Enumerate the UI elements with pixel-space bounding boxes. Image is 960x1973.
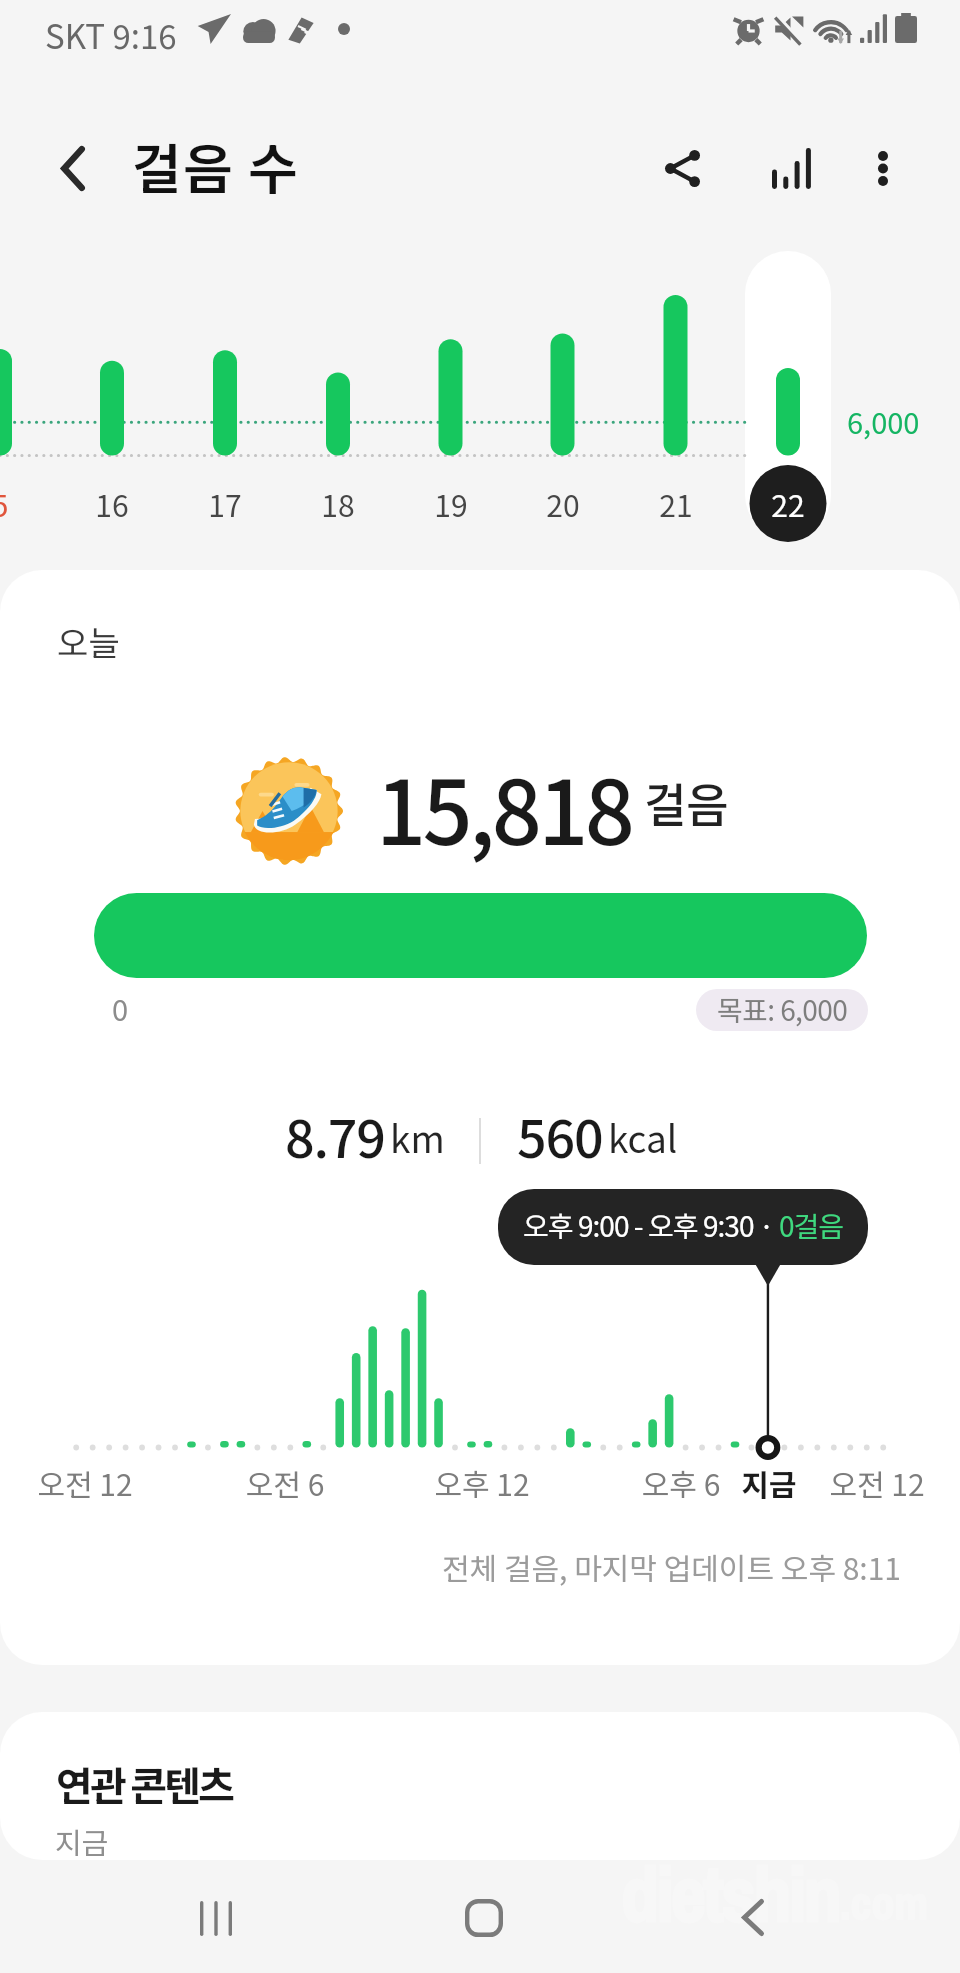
staticText: 전체 걸음, 마지막 업데이트 오후 8:11 — [0, 1545, 901, 1588]
staticText: km — [390, 1110, 445, 1164]
staticText: 8.79 — [285, 1098, 385, 1173]
button[interactable]: Back — [693, 1857, 813, 1973]
staticText: 지금 — [669, 1461, 869, 1504]
staticText: 16 — [52, 482, 172, 525]
staticText: 15,818 — [376, 743, 632, 870]
staticText: 지금 — [55, 1820, 109, 1860]
button[interactable]: Home — [424, 1858, 544, 1973]
staticText: 18 — [278, 482, 398, 525]
staticText: 오전 6 — [185, 1461, 385, 1504]
staticText: 오전 12 — [777, 1461, 960, 1504]
button[interactable]: 오늘 — [0, 570, 960, 1665]
staticText: 0걸음 — [779, 1205, 844, 1246]
staticText: 17 — [165, 482, 285, 525]
staticText: 21 — [616, 482, 736, 525]
staticText: 6,000 — [847, 400, 920, 442]
staticText: 20 — [503, 482, 623, 525]
button[interactable]: 연관 콘텐츠 — [0, 1712, 960, 1860]
staticText: dietshin — [621, 1842, 840, 1944]
staticText: 오후 12 — [382, 1461, 582, 1504]
staticText: 오후 6 — [581, 1461, 781, 1504]
staticText: 오전 12 — [0, 1461, 185, 1504]
button[interactable]: More options — [837, 122, 929, 214]
button[interactable]: Back — [34, 130, 111, 207]
staticText: 0 — [112, 987, 129, 1029]
staticText: 오후 9:00 - 오후 9:30 · — [523, 1205, 779, 1246]
staticText: 연관 콘텐츠 — [56, 1755, 233, 1813]
staticText: 19 — [391, 482, 511, 525]
staticText: 걸음 — [644, 769, 729, 836]
staticText: 5 — [0, 482, 60, 525]
staticText: 목표: 6,000 — [717, 989, 848, 1030]
staticText: kcal — [608, 1110, 678, 1164]
button[interactable]: Trends — [745, 122, 837, 214]
staticText: SKT 9:16 — [45, 11, 177, 59]
button[interactable]: Share — [636, 122, 728, 214]
staticText: 걸음 수 — [132, 126, 300, 204]
staticText: 560 — [517, 1098, 603, 1173]
button[interactable]: Recents — [156, 1858, 276, 1973]
staticText: 오늘 — [57, 617, 120, 666]
staticText: 22 — [728, 482, 848, 525]
